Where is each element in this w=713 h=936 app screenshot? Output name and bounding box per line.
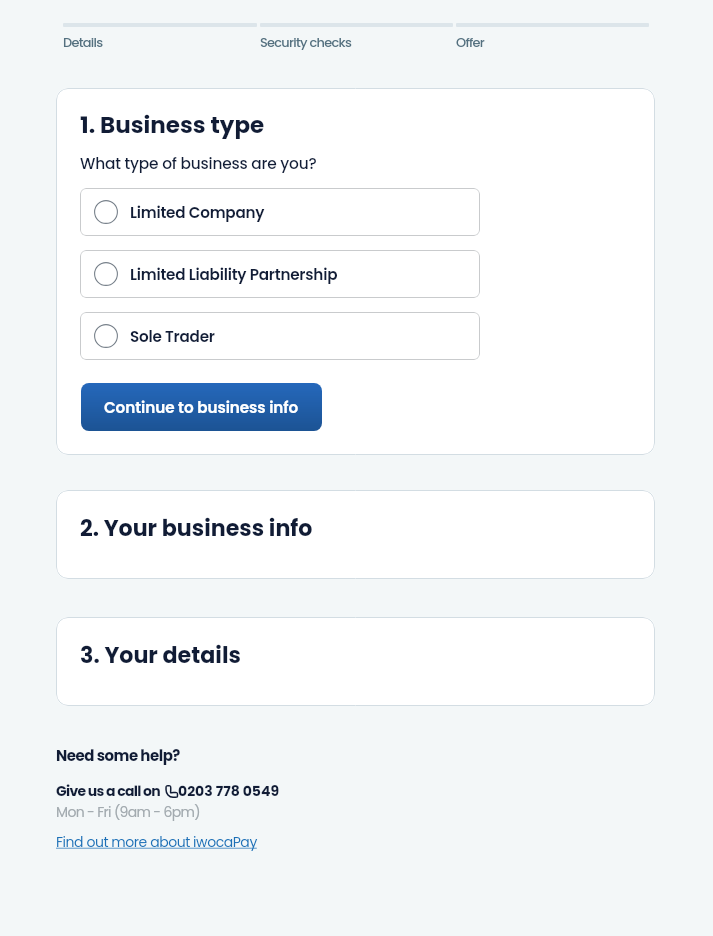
staticText: 3. Your details bbox=[80, 640, 241, 671]
button[interactable]: Limited Liability Partnership bbox=[80, 250, 480, 298]
staticText: Details bbox=[63, 33, 103, 51]
staticText: Mon - Fri (9am - 6pm) bbox=[56, 802, 200, 822]
staticText: Give us a call on bbox=[56, 781, 161, 801]
staticText: Limited Liability Partnership bbox=[130, 264, 338, 285]
button[interactable]: Security checks bbox=[260, 23, 453, 51]
button[interactable]: Details bbox=[63, 23, 257, 51]
staticText: Sole Trader bbox=[130, 326, 215, 347]
button[interactable]: Limited Company bbox=[80, 188, 480, 236]
staticText: What type of business are you? bbox=[80, 153, 317, 175]
staticText: 1. Business type bbox=[80, 109, 265, 141]
button[interactable]: 2. Your business info bbox=[56, 490, 655, 579]
button[interactable]: Sole Trader bbox=[80, 312, 480, 360]
button[interactable]: Continue to business info bbox=[81, 383, 322, 431]
staticText: Limited Company bbox=[130, 202, 265, 223]
staticText: Offer bbox=[456, 33, 485, 51]
staticText: Security checks bbox=[260, 33, 352, 51]
staticText: Continue to business info bbox=[104, 397, 299, 418]
staticText: 0203 778 0549 bbox=[178, 781, 280, 801]
button[interactable]: Find out more about iwocaPay bbox=[56, 832, 257, 852]
button[interactable]: Offer bbox=[456, 23, 649, 51]
staticText: Find out more about iwocaPay bbox=[56, 832, 257, 852]
button[interactable]: 3. Your details bbox=[56, 617, 655, 706]
staticText: Need some help? bbox=[56, 745, 180, 766]
other: Call bbox=[165, 785, 178, 798]
staticText: 2. Your business info bbox=[80, 513, 313, 544]
